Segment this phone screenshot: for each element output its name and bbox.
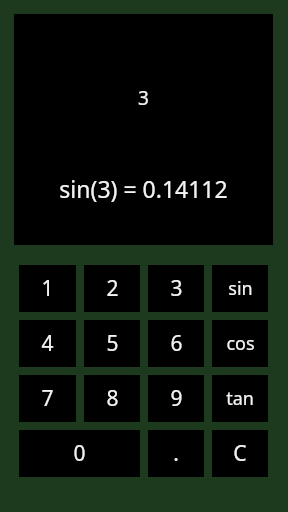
staticText: 9 [170,384,183,413]
button[interactable]: 5 [84,320,140,367]
staticText: 3 [138,85,149,111]
button[interactable]: 0 [19,430,140,477]
staticText: 3 [170,274,183,303]
staticText: C [233,439,247,468]
staticText: 4 [41,329,54,358]
button[interactable]: 7 [19,375,76,422]
button[interactable]: 9 [148,375,204,422]
button[interactable]: 6 [148,320,204,367]
staticText: 1 [41,274,54,303]
staticText: 8 [106,384,119,413]
button[interactable]: 8 [84,375,140,422]
button[interactable]: 4 [19,320,76,367]
button[interactable]: cos [212,320,268,367]
staticText: sin(3) = 0.14112 [59,173,228,204]
button[interactable]: tan [212,375,268,422]
staticText: sin [228,276,253,301]
staticText: tan [226,386,254,411]
staticText: 0 [73,439,86,468]
button[interactable]: . [148,430,204,477]
staticText: 2 [106,274,119,303]
staticText: 7 [41,384,54,413]
staticText: 6 [170,329,183,358]
button[interactable]: C [212,430,268,477]
button[interactable]: sin [212,265,268,312]
button[interactable]: 1 [19,265,76,312]
button[interactable]: 3 [148,265,204,312]
button[interactable]: 2 [84,265,140,312]
staticText: 5 [106,329,119,358]
staticText: cos [226,331,255,356]
staticText: . [173,439,179,468]
